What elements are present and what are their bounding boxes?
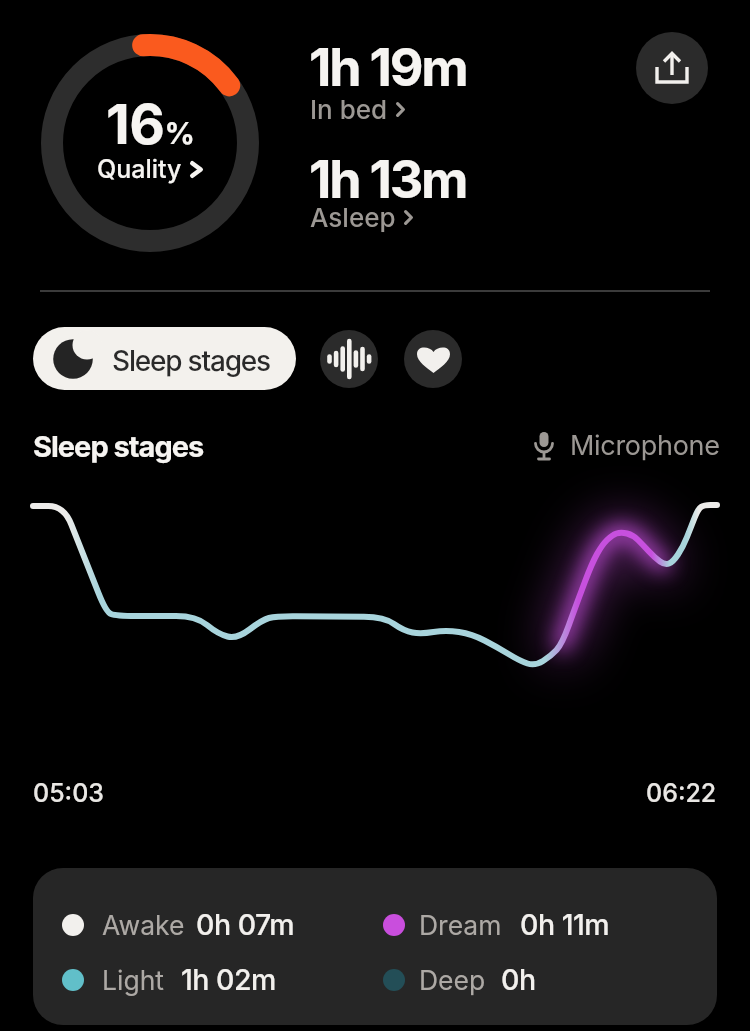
staticText: Awake bbox=[102, 909, 185, 941]
button[interactable] bbox=[320, 330, 378, 388]
staticText: Light bbox=[102, 964, 164, 996]
staticText: 0h bbox=[501, 962, 536, 996]
staticText: 16% bbox=[106, 91, 195, 158]
staticText: 1h 13m bbox=[309, 148, 467, 211]
staticText: 05:03 bbox=[33, 778, 104, 808]
button[interactable] bbox=[636, 32, 708, 104]
button[interactable]: Asleep bbox=[310, 202, 413, 233]
staticText: Deep bbox=[419, 964, 486, 996]
staticText: Quality bbox=[97, 154, 182, 184]
staticText: Asleep bbox=[310, 202, 396, 233]
staticText: Sleep stages bbox=[33, 429, 204, 464]
staticText: 1h 19m bbox=[309, 36, 467, 99]
staticText: 06:22 bbox=[646, 778, 717, 808]
staticText: Microphone bbox=[570, 429, 720, 462]
staticText: 0h 07m bbox=[196, 907, 295, 941]
button[interactable]: Microphone bbox=[535, 429, 720, 462]
button[interactable]: Sleep stages bbox=[33, 327, 296, 390]
button[interactable]: In bed bbox=[310, 94, 405, 125]
staticText: Dream bbox=[419, 909, 502, 941]
staticText: In bed bbox=[310, 94, 388, 125]
staticText: 1h 02m bbox=[181, 962, 276, 996]
button[interactable]: 16% bbox=[40, 33, 260, 253]
staticText: 0h 11m bbox=[520, 907, 610, 941]
staticText: Sleep stages bbox=[112, 344, 270, 378]
button[interactable] bbox=[404, 330, 462, 388]
